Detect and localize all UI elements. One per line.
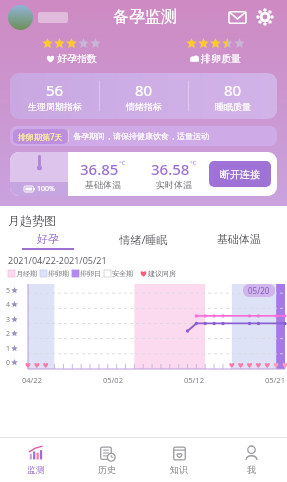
staticText: 基础体温: [217, 232, 261, 246]
staticText: 排卵日: [80, 269, 101, 278]
staticText: 1: [6, 344, 11, 354]
button[interactable]: 好孕: [0, 232, 95, 250]
staticText: 基础体温: [85, 179, 121, 190]
staticText: 排卵期: [48, 269, 69, 278]
button[interactable]: 排卵质量: [143, 38, 287, 65]
button[interactable]: 监测: [0, 438, 71, 482]
staticText: 生理周期指标: [28, 101, 82, 112]
staticText: 2: [6, 329, 11, 339]
staticText: 05/20: [248, 285, 270, 296]
staticText: 好孕指数: [57, 52, 97, 65]
staticText: 36.58: [151, 159, 190, 179]
staticText: 备孕期间，请保持健康饮食，适量运动: [73, 131, 209, 141]
staticText: 4: [6, 300, 11, 310]
staticText: 04/22: [22, 375, 42, 385]
staticText: 5: [6, 286, 11, 296]
staticText: 56: [46, 80, 64, 100]
staticText: 36.85: [80, 159, 119, 179]
button[interactable]: 80: [189, 80, 277, 112]
staticText: 建议同房: [148, 269, 176, 278]
staticText: 05/21: [265, 375, 285, 385]
button[interactable]: Settings: [251, 3, 279, 31]
staticText: 月趋势图: [8, 213, 56, 228]
staticText: 2021/04/22-2021/05/21: [8, 254, 107, 266]
staticText: 月经期: [16, 269, 37, 278]
staticText: 好孕: [37, 232, 59, 246]
button[interactable]: 断开连接: [209, 161, 271, 187]
staticText: 3: [6, 315, 11, 325]
staticText: 0: [6, 358, 11, 368]
button[interactable]: 56: [10, 80, 99, 112]
staticText: °C: [119, 159, 126, 167]
button[interactable]: 知识: [143, 438, 215, 482]
staticText: 05/12: [184, 375, 204, 385]
staticText: 监测: [27, 464, 45, 475]
staticText: 备孕监测: [113, 7, 177, 27]
staticText: 实时体温: [156, 179, 192, 190]
staticText: 排卵期第7天: [18, 131, 63, 142]
staticText: 05/02: [103, 375, 123, 385]
button[interactable]: 历史: [71, 438, 143, 482]
button[interactable]: 排卵期第7天: [10, 126, 277, 146]
button[interactable]: 好孕指数: [0, 38, 143, 65]
button[interactable]: 情绪/睡眠: [95, 232, 191, 251]
staticText: 知识: [170, 464, 188, 475]
staticText: 我: [247, 464, 256, 475]
button[interactable]: 80: [100, 80, 188, 112]
staticText: 情绪/睡眠: [119, 232, 168, 247]
staticText: 睡眠质量: [215, 101, 251, 112]
staticText: 历史: [98, 464, 116, 475]
staticText: 80: [224, 80, 242, 100]
button[interactable]: Messages: [223, 3, 251, 31]
staticText: 安全期: [112, 269, 133, 278]
staticText: 80: [135, 80, 153, 100]
staticText: 排卵质量: [201, 52, 241, 65]
button[interactable]: 基础体温: [191, 232, 287, 250]
button[interactable]: Profile avatar: [8, 5, 33, 30]
staticText: 断开连接: [220, 168, 260, 181]
staticText: °C: [190, 159, 197, 167]
staticText: 情绪指标: [126, 101, 162, 112]
button[interactable]: 我: [215, 438, 287, 482]
staticText: 100%: [37, 184, 55, 194]
